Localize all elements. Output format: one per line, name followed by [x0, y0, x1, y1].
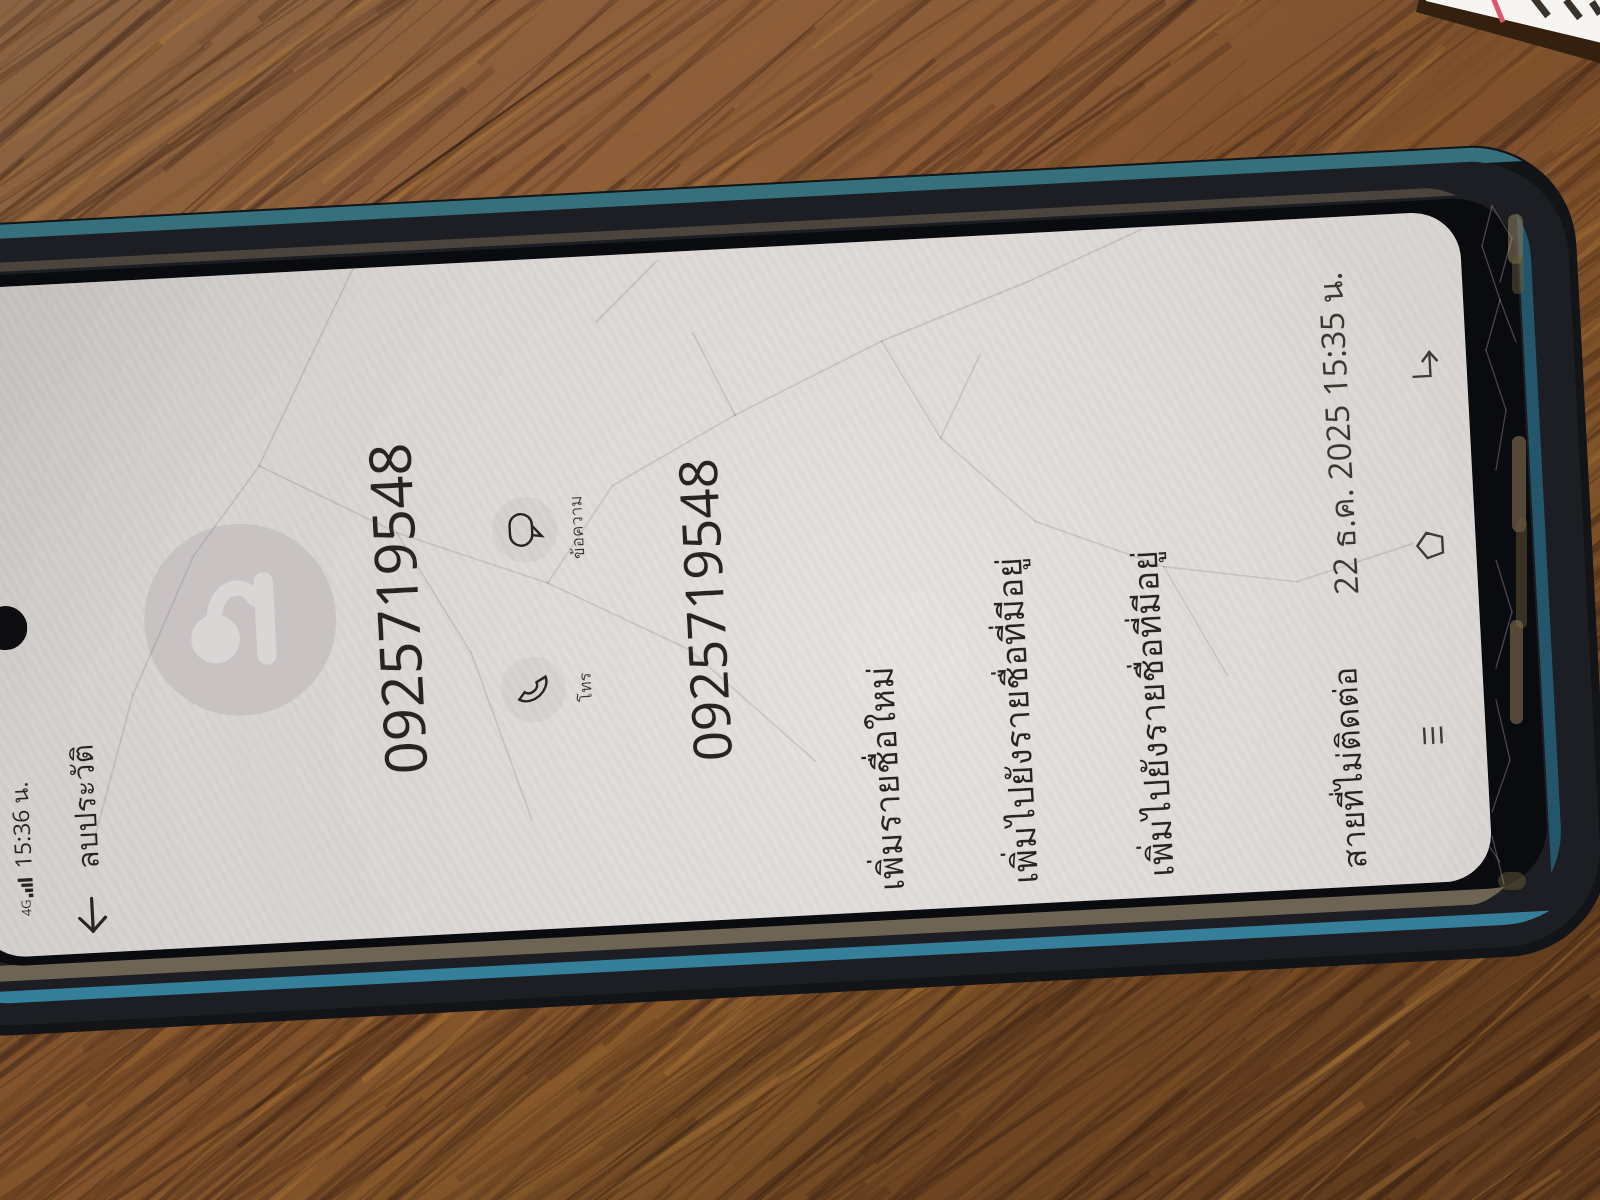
button[interactable]: เพิ่มไปยังรายชื่อที่มีอยู่: [946, 232, 1072, 886]
other: Message: [506, 511, 544, 549]
staticText: 0925719548: [348, 441, 444, 776]
staticText: เพิ่มรายชื่อใหม่: [852, 664, 920, 892]
staticText: เพิ่มไปยังรายชื่อที่มีอยู่: [981, 556, 1054, 885]
button[interactable]: Back: [1380, 321, 1469, 410]
staticText: 4G: [17, 899, 35, 917]
staticText: 0925719548: [659, 456, 747, 763]
button[interactable]: เพิ่มรายชื่อใหม่: [812, 239, 938, 893]
button[interactable]: Recents: [1389, 691, 1477, 780]
staticText: ลบประวัติ: [58, 742, 113, 870]
staticText: สายที่ไม่ติดต่อ: [1318, 665, 1381, 870]
button[interactable]: Message: [490, 485, 592, 572]
staticText: ข้อความ: [561, 494, 591, 560]
button[interactable]: Back: [61, 883, 124, 946]
button[interactable]: สายที่ไม่ติดต่อ: [1312, 664, 1387, 870]
button[interactable]: Call: [498, 645, 600, 732]
staticText: เพิ่มไปยังรายชื่อที่มีอยู่: [1117, 549, 1190, 878]
staticText: โทร: [570, 671, 599, 702]
button[interactable]: เพิ่มไปยังรายชื่อที่มีอยู่: [1082, 225, 1208, 879]
staticText: 22 ธ.ค. 2025 15:35 น.: [1303, 270, 1372, 596]
button[interactable]: Home: [1386, 501, 1474, 589]
staticText: 15:36 น.: [1, 781, 42, 869]
other: Call: [514, 671, 552, 708]
